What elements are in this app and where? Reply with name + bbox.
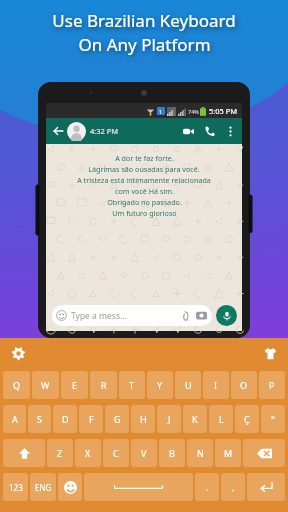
- button[interactable]: G: [105, 405, 129, 433]
- staticText: Obrigado no passado.: [107, 197, 182, 207]
- staticText: Q: [13, 379, 21, 391]
- button[interactable]: M: [215, 439, 241, 467]
- button[interactable]: Call: [202, 123, 218, 139]
- button[interactable]: N: [187, 439, 213, 467]
- staticText: Um futuro glorioso: [112, 208, 177, 218]
- button[interactable]: V: [131, 439, 157, 467]
- button[interactable]: Voice message: [216, 305, 237, 326]
- staticText: S: [37, 413, 42, 425]
- staticText: 4:32 PM: [90, 126, 119, 136]
- button[interactable]: X: [75, 439, 101, 467]
- staticText: K: [192, 413, 198, 425]
- button[interactable]: Backspace: [243, 439, 285, 467]
- button[interactable]: ENG: [30, 473, 56, 501]
- staticText: A tristeza está intimamente relacionada: [77, 175, 211, 185]
- button[interactable]: More options: [223, 124, 237, 138]
- staticText: Ç: [244, 413, 250, 425]
- other: Camera: [196, 310, 207, 321]
- staticText: Y: [157, 379, 163, 391]
- button[interactable]: L: [209, 405, 233, 433]
- staticText: 1: [159, 108, 163, 115]
- button[interactable]: C: [103, 439, 129, 467]
- button[interactable]: T: [119, 371, 145, 399]
- staticText: ENG: [35, 482, 52, 493]
- staticText: A dor te faz forte.: [115, 153, 174, 163]
- staticText: O: [240, 379, 248, 391]
- staticText: 123: [9, 482, 23, 493]
- staticText: F: [89, 413, 94, 425]
- button[interactable]: Type a mess...: [52, 305, 212, 326]
- button[interactable]: .: [195, 473, 219, 501]
- button[interactable]: K: [183, 405, 207, 433]
- button[interactable]: S: [28, 405, 51, 433]
- other: Attach: [181, 311, 191, 321]
- button[interactable]: Emoji: [58, 473, 82, 501]
- staticText: Z: [57, 447, 63, 459]
- staticText: E: [72, 379, 78, 391]
- button[interactable]: P: [259, 371, 285, 399]
- button[interactable]: F: [79, 405, 103, 433]
- button[interactable]: Enter: [247, 473, 285, 501]
- staticText: D: [62, 413, 69, 425]
- staticText: Type a mess...: [71, 310, 127, 322]
- staticText: °: [271, 413, 275, 425]
- button[interactable]: Ç: [235, 405, 259, 433]
- button[interactable]: Q: [3, 371, 30, 399]
- staticText: M: [224, 447, 233, 459]
- staticText: I: [214, 379, 218, 391]
- button[interactable]: B: [159, 439, 185, 467]
- staticText: G: [114, 413, 121, 425]
- staticText: N: [197, 447, 204, 459]
- button[interactable]: R: [90, 371, 117, 399]
- staticText: 5:05 PM: [209, 106, 238, 116]
- staticText: X: [85, 447, 91, 459]
- button[interactable]: Shift: [3, 439, 45, 467]
- button[interactable]: Video call: [180, 123, 196, 139]
- staticText: Lágrimas são ousadas para você.: [88, 164, 200, 174]
- button[interactable]: 123: [3, 473, 28, 501]
- staticText: T: [129, 379, 135, 391]
- staticText: W: [41, 379, 50, 391]
- button[interactable]: Space: [84, 473, 193, 501]
- button[interactable]: I: [203, 371, 229, 399]
- staticText: On Any Platform: [78, 33, 211, 56]
- staticText: L: [219, 413, 224, 425]
- button[interactable]: A: [3, 405, 26, 433]
- staticText: .: [206, 482, 209, 493]
- button[interactable]: O: [231, 371, 257, 399]
- button[interactable]: Settings: [7, 342, 29, 364]
- button[interactable]: J: [157, 405, 181, 433]
- button[interactable]: Themes: [259, 342, 281, 364]
- button[interactable]: Y: [147, 371, 173, 399]
- staticText: J: [168, 413, 171, 425]
- staticText: ,: [232, 482, 235, 493]
- button[interactable]: U: [175, 371, 201, 399]
- button[interactable]: D: [53, 405, 77, 433]
- staticText: C: [113, 447, 119, 459]
- button[interactable]: °: [261, 405, 285, 433]
- staticText: P: [269, 379, 275, 391]
- staticText: com você Há sim.: [115, 186, 174, 196]
- button[interactable]: H: [131, 405, 155, 433]
- staticText: H: [140, 413, 147, 425]
- staticText: V: [141, 447, 147, 459]
- staticText: A: [12, 413, 18, 425]
- staticText: Use Brazilian Keyboard: [52, 9, 236, 32]
- button[interactable]: ,: [221, 473, 245, 501]
- staticText: 74%: [188, 108, 199, 115]
- button[interactable]: E: [61, 371, 88, 399]
- staticText: R: [101, 379, 107, 391]
- button[interactable]: W: [32, 371, 59, 399]
- button[interactable]: Z: [47, 439, 73, 467]
- staticText: B: [169, 447, 175, 459]
- staticText: U: [185, 379, 192, 391]
- button[interactable]: Back: [51, 124, 65, 138]
